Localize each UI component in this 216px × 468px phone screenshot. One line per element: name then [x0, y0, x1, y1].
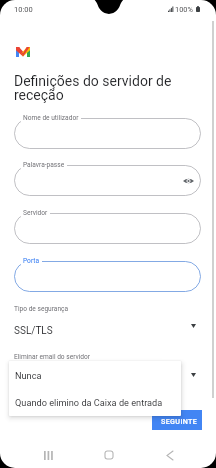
button[interactable]: Servidor: [14, 213, 201, 244]
button[interactable]: Porta: [14, 261, 201, 292]
button[interactable]: Eliminar email do servidor: [0, 349, 216, 385]
staticText: Definições do servidor de receção: [14, 73, 194, 104]
button[interactable]: Home: [91, 441, 127, 468]
button[interactable]: Palavra-passe: [14, 165, 201, 196]
button[interactable]: Back: [152, 441, 188, 468]
staticText: Tipo de segurança: [14, 305, 69, 313]
button[interactable]: SEGUINTE: [152, 410, 202, 430]
button[interactable]: Nome de utilizador: [14, 118, 201, 149]
staticText: Porta: [23, 257, 40, 265]
staticText: Nunca: [15, 370, 42, 381]
staticText: Palavra-passe: [23, 161, 65, 169]
button[interactable]: Tipo de segurança: [0, 300, 216, 340]
staticText: 100%: [175, 5, 193, 14]
button[interactable]: Recent apps: [30, 441, 66, 468]
staticText: 10:00: [14, 5, 33, 14]
staticText: Eliminar email do servidor: [14, 353, 90, 361]
staticText: Quando elimino da Caixa de entrada: [15, 397, 163, 408]
button[interactable]: Nunca: [9, 361, 181, 388]
staticText: SSL/TLS: [14, 325, 53, 337]
button[interactable]: Quando elimino da Caixa de entrada: [9, 388, 181, 416]
staticText: SEGUINTE: [161, 417, 198, 425]
staticText: Nome de utilizador: [23, 114, 79, 122]
staticText: Servidor: [23, 209, 48, 217]
